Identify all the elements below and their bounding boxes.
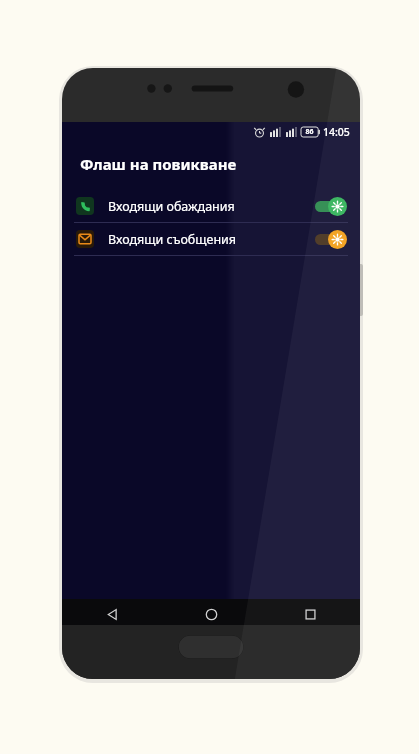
staticText: Входящи съобщения xyxy=(108,231,237,248)
button[interactable]: Toggle incoming calls flash xyxy=(314,195,348,217)
staticText: Флаш на повикване xyxy=(80,154,237,174)
staticText: Входящи обаждания xyxy=(108,198,235,215)
button[interactable]: Home xyxy=(162,599,261,629)
button[interactable]: Back xyxy=(62,599,162,629)
button[interactable]: Входящи съобщения xyxy=(62,223,360,255)
staticText: 86 xyxy=(305,127,314,137)
button[interactable]: Recent apps xyxy=(261,599,360,629)
staticText: 14:05 xyxy=(323,125,350,139)
button[interactable]: Toggle incoming messages flash xyxy=(314,228,348,250)
button[interactable]: Входящи обаждания xyxy=(62,190,360,222)
